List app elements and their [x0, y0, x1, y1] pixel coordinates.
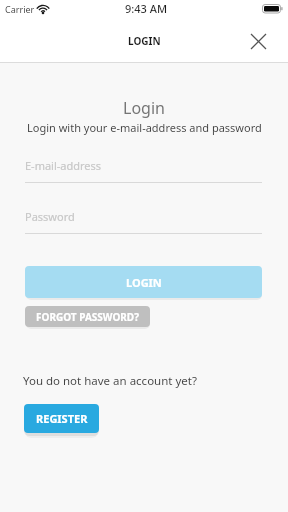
staticText: Password [25, 209, 75, 224]
button[interactable]: LOGIN [25, 266, 262, 298]
staticText: REGISTER [36, 411, 88, 426]
staticText: FORGOT PASSWORD? [36, 310, 139, 324]
staticText: E-mail-address [25, 158, 102, 173]
staticText: Login [123, 97, 165, 119]
button[interactable]: REGISTER [24, 404, 99, 433]
staticText: 9:43 AM [125, 1, 168, 16]
button[interactable]: FORGOT PASSWORD? [25, 306, 150, 327]
staticText: Carrier [5, 3, 35, 15]
staticText: Login with your e-mail-address and passw… [27, 120, 262, 135]
button[interactable] [244, 27, 272, 55]
staticText: LOGIN [128, 34, 161, 48]
staticText: LOGIN [126, 275, 162, 290]
staticText: You do not have an account yet? [23, 373, 197, 389]
